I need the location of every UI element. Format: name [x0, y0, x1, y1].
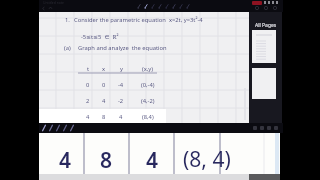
button[interactable]: Page action 3 — [265, 123, 272, 133]
staticText: (8,4) — [142, 113, 154, 121]
staticText: 0 — [102, 81, 106, 89]
button[interactable]: Page 1 — [252, 30, 276, 63]
button[interactable]: Page action 4 — [272, 123, 279, 133]
button[interactable]: Home — [47, 4, 54, 12]
staticText: 4 — [59, 146, 72, 175]
button[interactable]: Redo — [261, 4, 270, 12]
staticText: (a) — [64, 44, 71, 52]
button[interactable]: Tool 1 — [135, 2, 142, 11]
button[interactable]: Tool 3 — [149, 2, 156, 11]
button[interactable]: Undo — [252, 4, 261, 12]
staticText: (8, 4) — [183, 145, 231, 174]
staticText: (0,-4) — [141, 81, 155, 89]
staticText: t — [87, 65, 90, 73]
staticText: -4 — [118, 81, 124, 89]
staticText: 1. — [65, 16, 70, 24]
staticText: (x,y) — [142, 65, 154, 73]
staticText: -5≤t≤5 ∈ ℝ² — [81, 33, 119, 41]
button[interactable]: Page action 2 — [258, 123, 265, 133]
button[interactable]: Tool 5 — [163, 2, 170, 11]
button[interactable]: Pen 4 — [61, 123, 68, 133]
button[interactable]: Recording — [251, 1, 262, 5]
staticText: 4 — [86, 113, 90, 121]
staticText: y — [120, 65, 123, 73]
staticText: 4 — [102, 97, 106, 105]
staticText: All Pages — [255, 22, 277, 29]
staticText: Untitled note — [43, 0, 64, 5]
button[interactable]: Tool 7 — [177, 2, 184, 11]
staticText: -2 — [118, 97, 124, 105]
staticText: (4,-2) — [141, 97, 155, 105]
button[interactable]: Tool 4 — [156, 2, 163, 11]
button[interactable]: Tool 2 — [142, 2, 149, 11]
staticText: 0 — [86, 81, 90, 89]
button[interactable]: Tool 8 — [184, 2, 191, 11]
button[interactable]: Pen 5 — [68, 123, 75, 133]
button[interactable]: Pen 1 — [40, 123, 47, 133]
button[interactable]: Pen 3 — [54, 123, 61, 133]
staticText: 2 — [86, 97, 90, 105]
button[interactable]: Back — [40, 4, 47, 12]
staticText: x — [102, 65, 106, 73]
staticText: 4 — [119, 113, 123, 121]
staticText: 4 — [146, 146, 159, 175]
button[interactable]: Pen 2 — [47, 123, 54, 133]
staticText: Graph and analyze the equation — [78, 44, 167, 52]
button[interactable]: All Pages — [249, 21, 282, 29]
staticText: 8 — [102, 113, 106, 121]
button[interactable]: Page action 1 — [251, 123, 258, 133]
button[interactable]: Menu — [270, 4, 279, 12]
button[interactable]: Tool 6 — [170, 2, 177, 11]
staticText: 8 — [100, 146, 113, 175]
staticText: Consider the parametric equation x=2t, y… — [74, 16, 203, 24]
